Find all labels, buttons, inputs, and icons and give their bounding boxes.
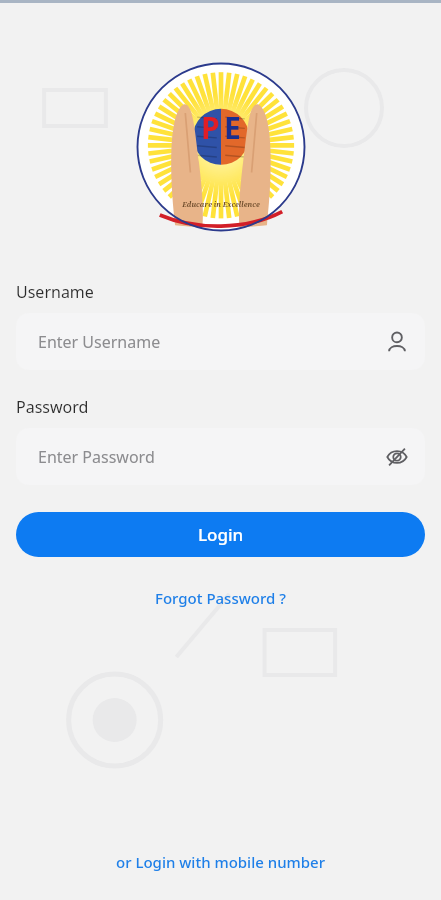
staticText: Username (16, 281, 94, 303)
staticText: or Login with mobile number (116, 852, 325, 872)
staticText: E (224, 107, 241, 148)
other: Show password (377, 437, 417, 477)
other: Username (377, 322, 417, 362)
button[interactable]: or Login with mobile number (102, 846, 339, 878)
button[interactable]: Login (16, 512, 425, 557)
staticText: Login (198, 523, 244, 546)
button[interactable]: Enter Password (16, 428, 425, 485)
staticText: Educare in Excellence (182, 200, 260, 210)
staticText: Enter Password (38, 446, 377, 468)
staticText: Forgot Password ? (155, 588, 286, 608)
staticText: Enter Username (38, 331, 377, 353)
button[interactable]: Forgot Password ? (143, 583, 298, 613)
staticText: Password (16, 396, 89, 418)
button[interactable]: Enter Username (16, 313, 425, 370)
staticText: P (201, 107, 220, 148)
